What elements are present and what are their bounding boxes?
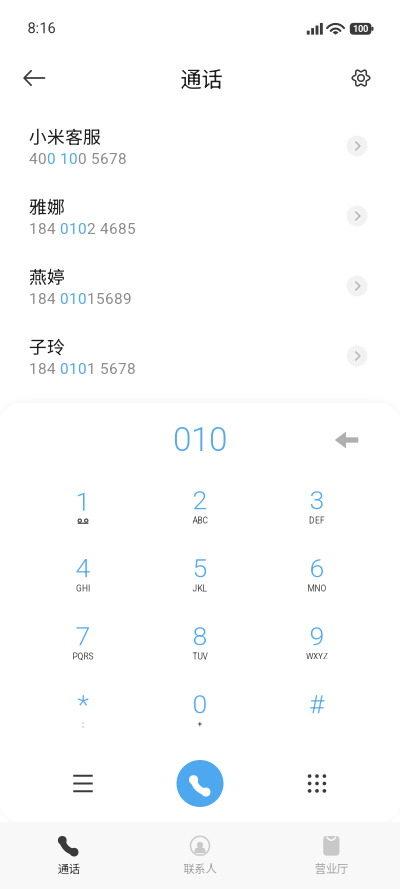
staticText: 子玲 (29, 333, 65, 359)
staticText: 营业厅 (315, 860, 348, 876)
button[interactable]: * (24, 677, 141, 745)
staticText: 5 (192, 552, 207, 584)
staticText: 2 4685 (87, 220, 136, 238)
staticText: 15689 (87, 290, 132, 308)
button[interactable]: 2 (141, 473, 258, 541)
button[interactable]: Call (141, 745, 258, 822)
button[interactable]: 小米客服 (0, 111, 400, 181)
staticText: 9 (309, 620, 324, 652)
staticText: 燕婷 (29, 263, 65, 289)
staticText: 0 10 (47, 150, 78, 168)
button[interactable]: 子玲 (0, 321, 400, 391)
staticText: WXYZ (306, 652, 328, 661)
staticText: 8:16 (27, 20, 55, 37)
staticText: * (77, 688, 88, 720)
staticText: 雅娜 (29, 193, 65, 219)
staticText: 184 (29, 290, 60, 308)
button[interactable]: 0 (141, 677, 258, 745)
staticText: 通话 (58, 860, 80, 876)
staticText: ABC (192, 516, 207, 525)
staticText: 010 (60, 360, 87, 378)
staticText: 1 5678 (87, 360, 136, 378)
staticText: GHI (76, 584, 90, 593)
staticText: 3 (309, 484, 324, 516)
staticText: TUV (192, 652, 207, 661)
button[interactable]: 6 (258, 541, 375, 609)
staticText: 4 (75, 552, 90, 584)
staticText: : (82, 720, 84, 729)
staticText: + (197, 720, 202, 729)
staticText: 6 (309, 552, 324, 584)
staticText: 0 (192, 688, 207, 720)
button[interactable]: Back (11, 56, 57, 100)
button[interactable]: 通话 (3, 822, 134, 889)
button[interactable]: 8 (141, 609, 258, 677)
staticText: DEF (309, 516, 325, 525)
staticText: 0 5678 (78, 150, 127, 168)
staticText: MNO (307, 584, 326, 593)
button[interactable]: 1 (24, 473, 141, 541)
staticText: 010 (173, 420, 227, 459)
button[interactable]: 雅娜 (0, 181, 400, 251)
button[interactable]: 4 (24, 541, 141, 609)
staticText: 184 (29, 220, 60, 238)
staticText: 40 (29, 150, 47, 168)
staticText: 2 (192, 484, 207, 516)
staticText: 184 (29, 360, 60, 378)
button[interactable]: Keypad (258, 745, 375, 822)
button[interactable]: 联系人 (134, 822, 266, 889)
staticText: # (309, 688, 325, 720)
button[interactable]: 7 (24, 609, 141, 677)
staticText: 小米客服 (29, 123, 101, 149)
button[interactable]: 9 (258, 609, 375, 677)
staticText: 010 (60, 220, 87, 238)
button[interactable]: Delete (319, 411, 373, 465)
button[interactable]: # (258, 677, 375, 745)
button[interactable]: 5 (141, 541, 258, 609)
staticText: PQRS (72, 652, 93, 661)
staticText: 8 (192, 620, 207, 652)
staticText: 010 (60, 290, 87, 308)
staticText: 1 (75, 486, 90, 517)
button[interactable]: 营业厅 (266, 822, 397, 889)
staticText: 联系人 (183, 860, 216, 876)
button[interactable]: 燕婷 (0, 251, 400, 321)
staticText: 7 (75, 620, 90, 652)
staticText: 100 (353, 23, 368, 34)
button[interactable]: Call log (24, 745, 141, 822)
button[interactable]: Settings (338, 56, 384, 100)
button[interactable]: 3 (258, 473, 375, 541)
staticText: 通话 (180, 62, 222, 93)
staticText: JKL (192, 584, 207, 593)
